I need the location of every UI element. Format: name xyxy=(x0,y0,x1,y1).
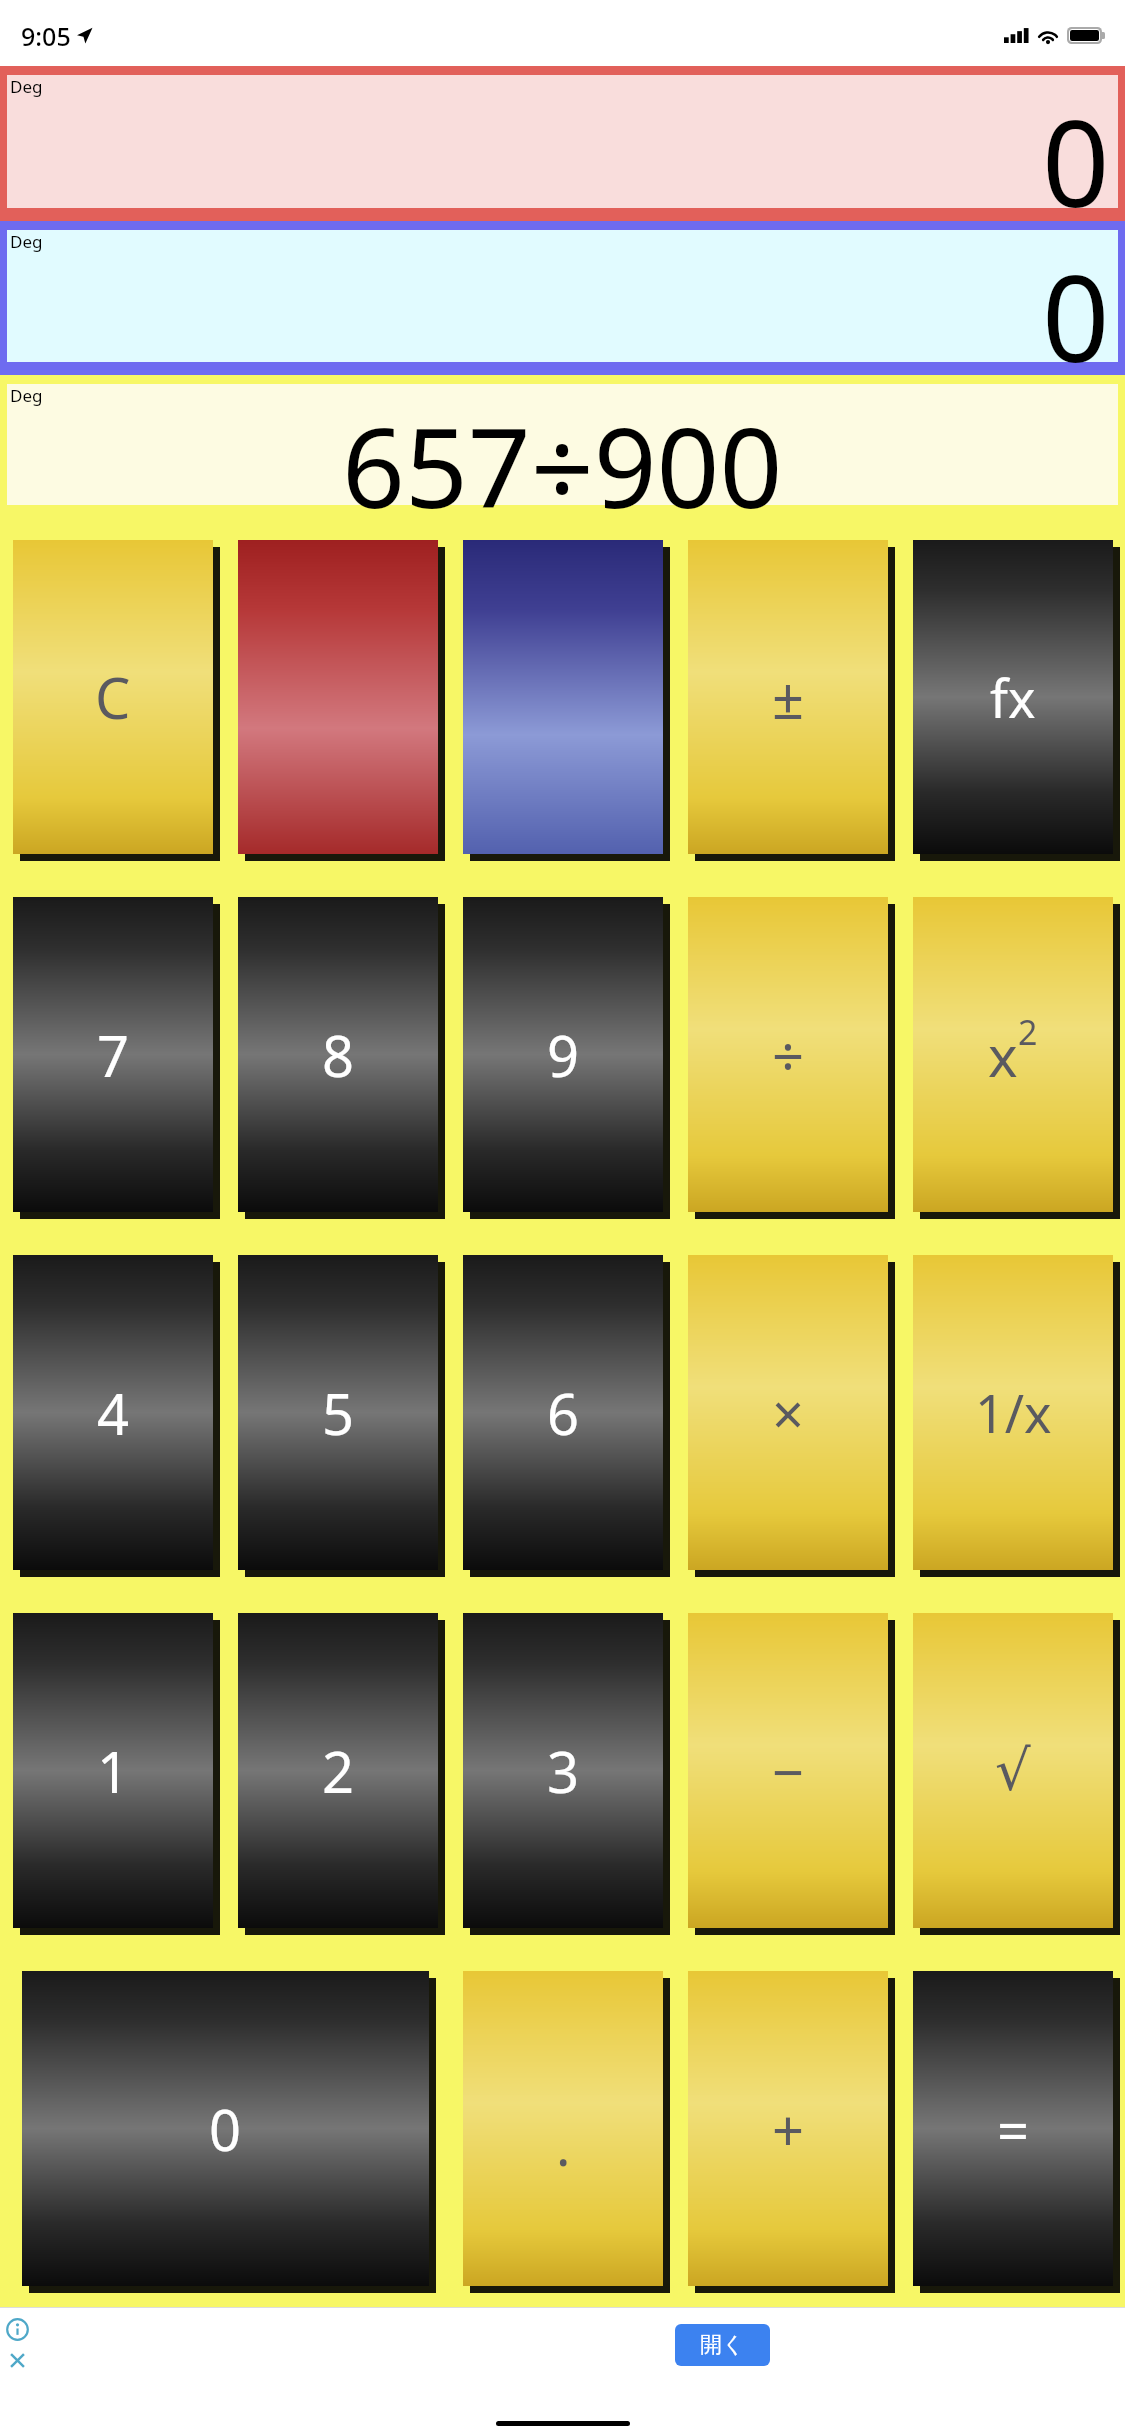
staticText: 0 xyxy=(1042,236,1110,368)
staticText: 0 xyxy=(209,2091,242,2167)
staticText: 5 xyxy=(322,1375,355,1451)
staticText: 3 xyxy=(547,1733,580,1809)
button[interactable]: 6 xyxy=(454,1237,671,1587)
button[interactable]: . xyxy=(454,1953,671,2303)
button[interactable]: 7 xyxy=(4,879,221,1229)
staticText: + xyxy=(772,2091,805,2167)
button[interactable]: fx xyxy=(904,522,1121,871)
button[interactable]: 0 xyxy=(4,1953,446,2303)
staticText: 開く xyxy=(700,2331,745,2359)
staticText: 1/x xyxy=(975,1377,1052,1448)
staticText: ÷ xyxy=(772,1017,805,1093)
staticText: 9:05 xyxy=(21,19,71,53)
staticText: ± xyxy=(772,659,805,735)
button[interactable]: 1/x xyxy=(904,1237,1121,1587)
staticText: 7 xyxy=(97,1017,130,1093)
button[interactable]: 2 xyxy=(229,1595,446,1945)
button[interactable]: ± xyxy=(679,522,896,871)
button[interactable]: Red memory xyxy=(229,522,446,871)
button[interactable]: √ xyxy=(904,1595,1121,1945)
staticText: × xyxy=(772,1375,805,1451)
staticText: 657÷900 xyxy=(342,390,783,511)
staticText: 8 xyxy=(322,1017,355,1093)
button[interactable]: Deg xyxy=(0,221,1125,375)
button[interactable]: 開く xyxy=(675,2324,770,2366)
staticText: √ xyxy=(995,1738,1031,1803)
button[interactable]: 5 xyxy=(229,1237,446,1587)
staticText: 2 xyxy=(1018,1009,1038,1055)
staticText: C xyxy=(95,659,131,735)
button[interactable]: 9 xyxy=(454,879,671,1229)
staticText: Deg xyxy=(10,75,43,98)
button[interactable]: Close ad xyxy=(6,2349,29,2372)
staticText: fx xyxy=(990,662,1036,733)
button[interactable]: Blue memory xyxy=(454,522,671,871)
button[interactable]: 4 xyxy=(4,1237,221,1587)
button[interactable]: Deg xyxy=(0,375,1125,518)
staticText: 2 xyxy=(322,1733,355,1809)
button[interactable]: 3 xyxy=(454,1595,671,1945)
button[interactable]: 1 xyxy=(4,1595,221,1945)
button[interactable]: 8 xyxy=(229,879,446,1229)
staticText: . xyxy=(556,2108,571,2182)
button[interactable]: ÷ xyxy=(679,879,896,1229)
button[interactable]: Ad info xyxy=(6,2318,29,2341)
button[interactable]: C xyxy=(4,522,221,871)
staticText: 4 xyxy=(97,1375,130,1451)
staticText: 0 xyxy=(1042,81,1110,214)
button[interactable]: Deg xyxy=(0,66,1125,221)
staticText: − xyxy=(772,1733,805,1809)
button[interactable]: + xyxy=(679,1953,896,2303)
button[interactable]: = xyxy=(904,1953,1121,2303)
staticText: 1 xyxy=(97,1733,130,1809)
staticText: Deg xyxy=(10,230,43,253)
staticText: Deg xyxy=(10,384,43,407)
button[interactable]: × xyxy=(679,1237,896,1587)
button[interactable]: x² xyxy=(904,879,1121,1229)
staticText: 9 xyxy=(547,1017,580,1093)
staticText: 6 xyxy=(547,1375,580,1451)
button[interactable]: − xyxy=(679,1595,896,1945)
staticText: = xyxy=(997,2091,1030,2167)
staticText: x xyxy=(988,1017,1018,1093)
